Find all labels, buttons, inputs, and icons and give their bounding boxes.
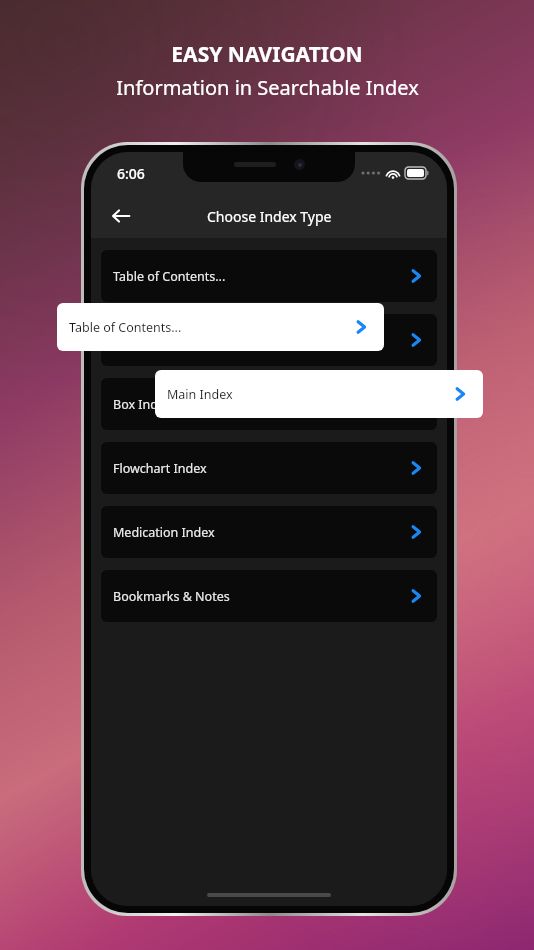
staticText: Table of Contents...: [69, 319, 182, 336]
staticText: Table of Contents...: [113, 268, 226, 285]
staticText: Information in Searchable Index: [116, 74, 419, 101]
button[interactable]: Main Index: [155, 370, 483, 418]
staticText: EASY NAVIGATION: [171, 40, 363, 69]
staticText: Flowchart Index: [113, 460, 207, 477]
button[interactable]: Table of Contents...: [57, 303, 384, 351]
button[interactable]: Table of Contents...: [101, 250, 437, 302]
button[interactable]: Box Index: [101, 378, 437, 430]
staticText: 6:06: [117, 164, 145, 183]
staticText: Medication Index: [113, 524, 215, 541]
staticText: Box Index: [113, 396, 172, 413]
button[interactable]: [101, 314, 437, 366]
button[interactable]: Medication Index: [101, 506, 437, 558]
staticText: Bookmarks & Notes: [113, 588, 230, 605]
button[interactable]: Flowchart Index: [101, 442, 437, 494]
button[interactable]: Bookmarks & Notes: [101, 570, 437, 622]
staticText: Choose Index Type: [207, 207, 332, 226]
staticText: Main Index: [167, 386, 233, 403]
button[interactable]: Back: [103, 198, 139, 234]
